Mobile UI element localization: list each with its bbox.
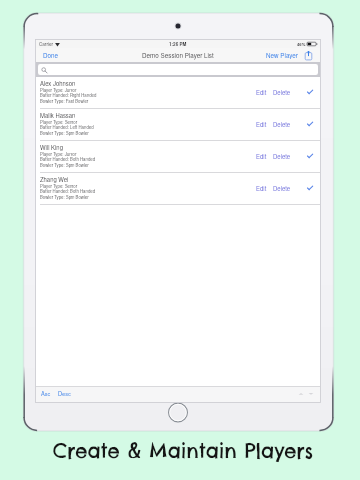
button[interactable]: Selected — [305, 151, 315, 161]
staticText: Player Type: Senior Batter Handed: Left … — [40, 119, 94, 137]
button[interactable]: Edit — [253, 85, 270, 99]
button[interactable]: Edit — [253, 181, 270, 195]
staticText: 1:26 PM — [169, 41, 187, 48]
button[interactable]: Selected — [305, 119, 315, 129]
staticText: 46% — [297, 41, 306, 47]
button[interactable]: Previous — [297, 390, 305, 398]
button[interactable]: Edit — [253, 117, 270, 131]
button[interactable]: Edit — [253, 149, 270, 163]
button[interactable]: Done — [40, 48, 62, 62]
staticText: Edit — [256, 120, 267, 128]
button[interactable]: Malik Hassan — [36, 109, 320, 141]
button[interactable]: Desc — [56, 387, 73, 401]
staticText: Edit — [256, 184, 267, 192]
staticText: Player Type: Junior Batter Handed: Right… — [40, 87, 97, 105]
staticText: Zhang Wei — [40, 175, 69, 183]
staticText: Done — [43, 51, 59, 59]
staticText: Delete — [273, 184, 291, 192]
staticText: Player Type: Junior Batter Handed: Both … — [40, 151, 96, 169]
button[interactable] — [38, 64, 318, 75]
button[interactable]: Delete — [270, 85, 294, 99]
button[interactable]: Share — [304, 50, 313, 61]
staticText: Asc — [41, 390, 51, 398]
staticText: Player Type: Senior Batter Handed: Both … — [40, 183, 96, 201]
button[interactable]: Delete — [270, 149, 294, 163]
button[interactable]: New Player — [264, 48, 300, 62]
button[interactable]: Next — [307, 390, 315, 398]
button[interactable]: Selected — [305, 183, 315, 193]
staticText: Malik Hassan — [40, 111, 76, 119]
button[interactable]: Zhang Wei — [36, 173, 320, 205]
staticText: Carrier — [39, 41, 54, 48]
staticText: Delete — [273, 120, 291, 128]
button[interactable]: Will King — [36, 141, 320, 173]
button[interactable]: Delete — [270, 181, 294, 195]
staticText: Create & Maintain Players — [53, 439, 313, 464]
staticText: Edit — [256, 88, 267, 96]
staticText: Demo Session Player List — [142, 51, 214, 60]
staticText: Desc — [58, 390, 71, 398]
button[interactable]: Alex Johnson — [36, 77, 320, 109]
staticText: Delete — [273, 152, 291, 160]
button[interactable]: Asc — [39, 387, 53, 401]
staticText: Delete — [273, 88, 291, 96]
staticText: New Player — [266, 51, 298, 59]
staticText: Will King — [40, 143, 63, 151]
staticText: Alex Johnson — [40, 79, 76, 87]
staticText: Edit — [256, 152, 267, 160]
button[interactable]: Selected — [305, 87, 315, 97]
button[interactable]: Delete — [270, 117, 294, 131]
